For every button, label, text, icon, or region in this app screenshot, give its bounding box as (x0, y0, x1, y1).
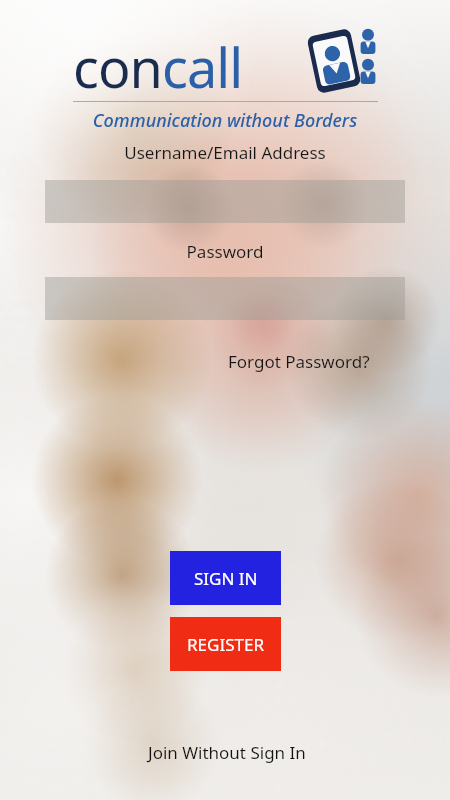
staticText: Forgot Password? (228, 350, 370, 373)
staticText: Join Without Sign In (148, 741, 306, 764)
button[interactable]: Username or Email Address (45, 180, 405, 223)
staticText: Communication without Borders (0, 108, 450, 133)
staticText: Username/Email Address (0, 141, 450, 164)
button[interactable]: Password (45, 277, 405, 320)
staticText: Password (0, 240, 450, 263)
button[interactable]: Join Without Sign In (144, 738, 310, 767)
button[interactable]: con (73, 30, 243, 104)
button[interactable]: Forgot Password? (224, 347, 374, 376)
staticText: con (73, 30, 162, 104)
staticText: call (162, 30, 243, 104)
staticText: REGISTER (187, 633, 264, 656)
staticText: SIGN IN (194, 567, 258, 590)
button[interactable]: SIGN IN (170, 551, 281, 605)
button[interactable]: REGISTER (170, 617, 281, 671)
